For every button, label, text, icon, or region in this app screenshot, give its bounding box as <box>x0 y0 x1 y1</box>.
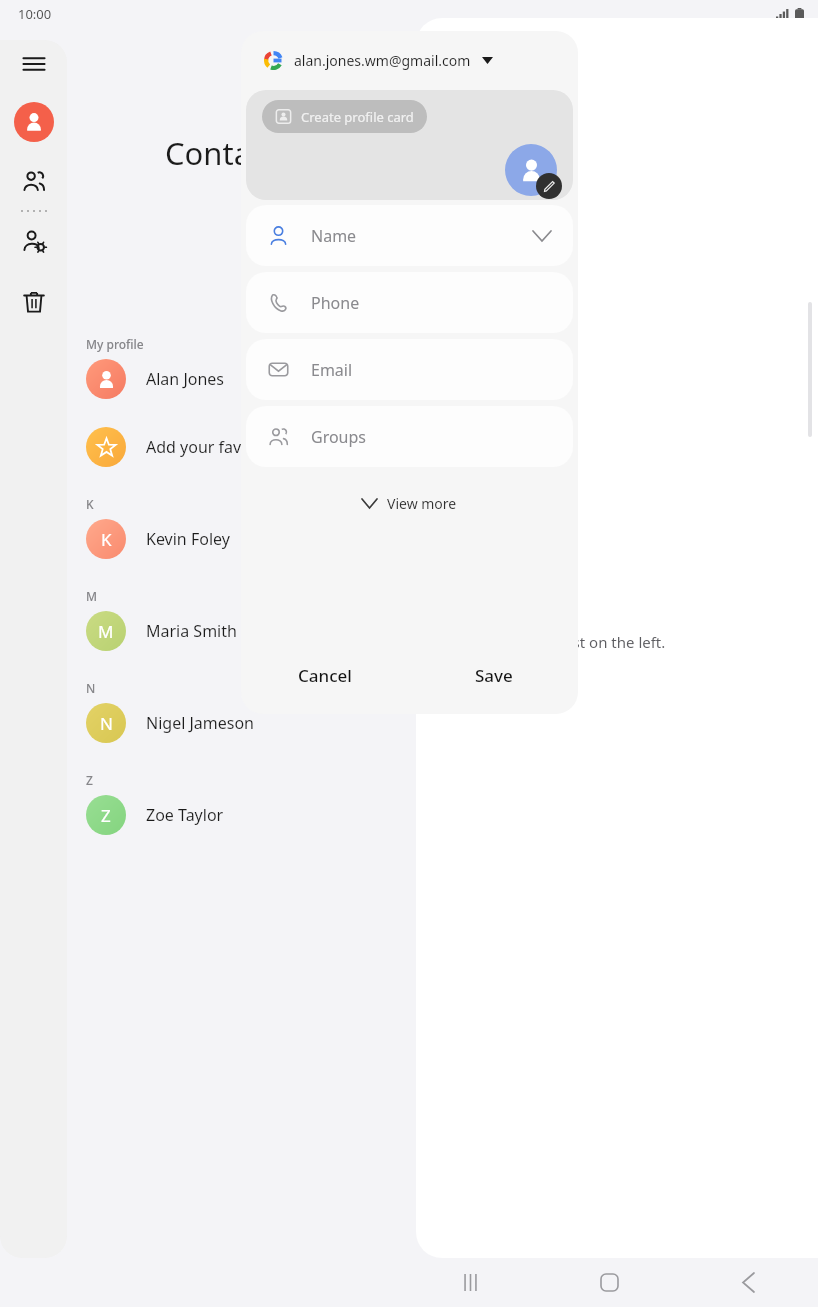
button[interactable]: Manage contacts <box>10 217 58 265</box>
staticText: Kevin Foley <box>146 528 230 550</box>
button[interactable]: M <box>86 608 416 654</box>
staticText: K <box>86 496 94 512</box>
button[interactable]: Contacts <box>14 102 54 142</box>
button[interactable]: Menu <box>10 40 58 88</box>
button[interactable]: Name <box>246 205 573 266</box>
staticText: Contacts <box>165 132 293 174</box>
staticText: Z <box>101 804 111 827</box>
staticText: Alan Jones <box>146 368 225 390</box>
button[interactable]: Edit photo <box>536 173 562 199</box>
staticText: Add your favourite contacts <box>146 436 354 458</box>
button[interactable]: Create profile card <box>262 100 427 133</box>
staticText: Groups <box>311 426 367 448</box>
staticText: M <box>86 588 98 604</box>
button[interactable]: Email <box>246 339 573 400</box>
staticText: alan.jones.wm@gmail.com <box>294 51 471 70</box>
button[interactable]: Z <box>86 792 416 838</box>
button[interactable]: Recents <box>400 1258 540 1307</box>
staticText: Phone <box>311 292 360 314</box>
staticText: Cancel <box>298 664 352 687</box>
staticText: Create profile card <box>301 108 414 126</box>
staticText: 10:00 <box>18 5 52 23</box>
button[interactable]: K <box>86 516 416 562</box>
button[interactable]: Home <box>540 1258 679 1307</box>
button[interactable]: Groups <box>246 406 573 467</box>
staticText: Nigel Jameson <box>146 712 255 734</box>
staticText: K <box>101 528 112 551</box>
button[interactable]: Cancel <box>241 636 409 714</box>
button[interactable]: Add your favourite contacts <box>86 424 416 470</box>
staticText: N <box>86 680 96 696</box>
staticText: Name <box>311 225 357 247</box>
button[interactable]: N <box>86 700 416 746</box>
button[interactable]: Save <box>409 636 578 714</box>
button[interactable]: Groups <box>10 157 58 205</box>
staticText: My profile <box>86 336 144 352</box>
button[interactable]: Profile photo <box>505 144 557 196</box>
staticText: Maria Smith <box>146 620 237 642</box>
staticText: Save <box>475 664 513 687</box>
button[interactable]: Back <box>679 1258 818 1307</box>
button[interactable]: Phone <box>246 272 573 333</box>
staticText: Select a contact from the list on the le… <box>416 632 666 652</box>
button[interactable]: View more <box>350 489 469 518</box>
staticText: View more <box>387 494 457 513</box>
button[interactable]: Trash <box>10 278 58 326</box>
staticText: M <box>98 620 114 643</box>
staticText: Z <box>86 772 93 788</box>
staticText: Email <box>311 359 353 381</box>
button[interactable]: alan.jones.wm@gmail.com <box>241 31 578 90</box>
staticText: Zoe Taylor <box>146 804 224 826</box>
staticText: N <box>100 712 113 735</box>
button[interactable]: Alan Jones <box>86 356 416 402</box>
